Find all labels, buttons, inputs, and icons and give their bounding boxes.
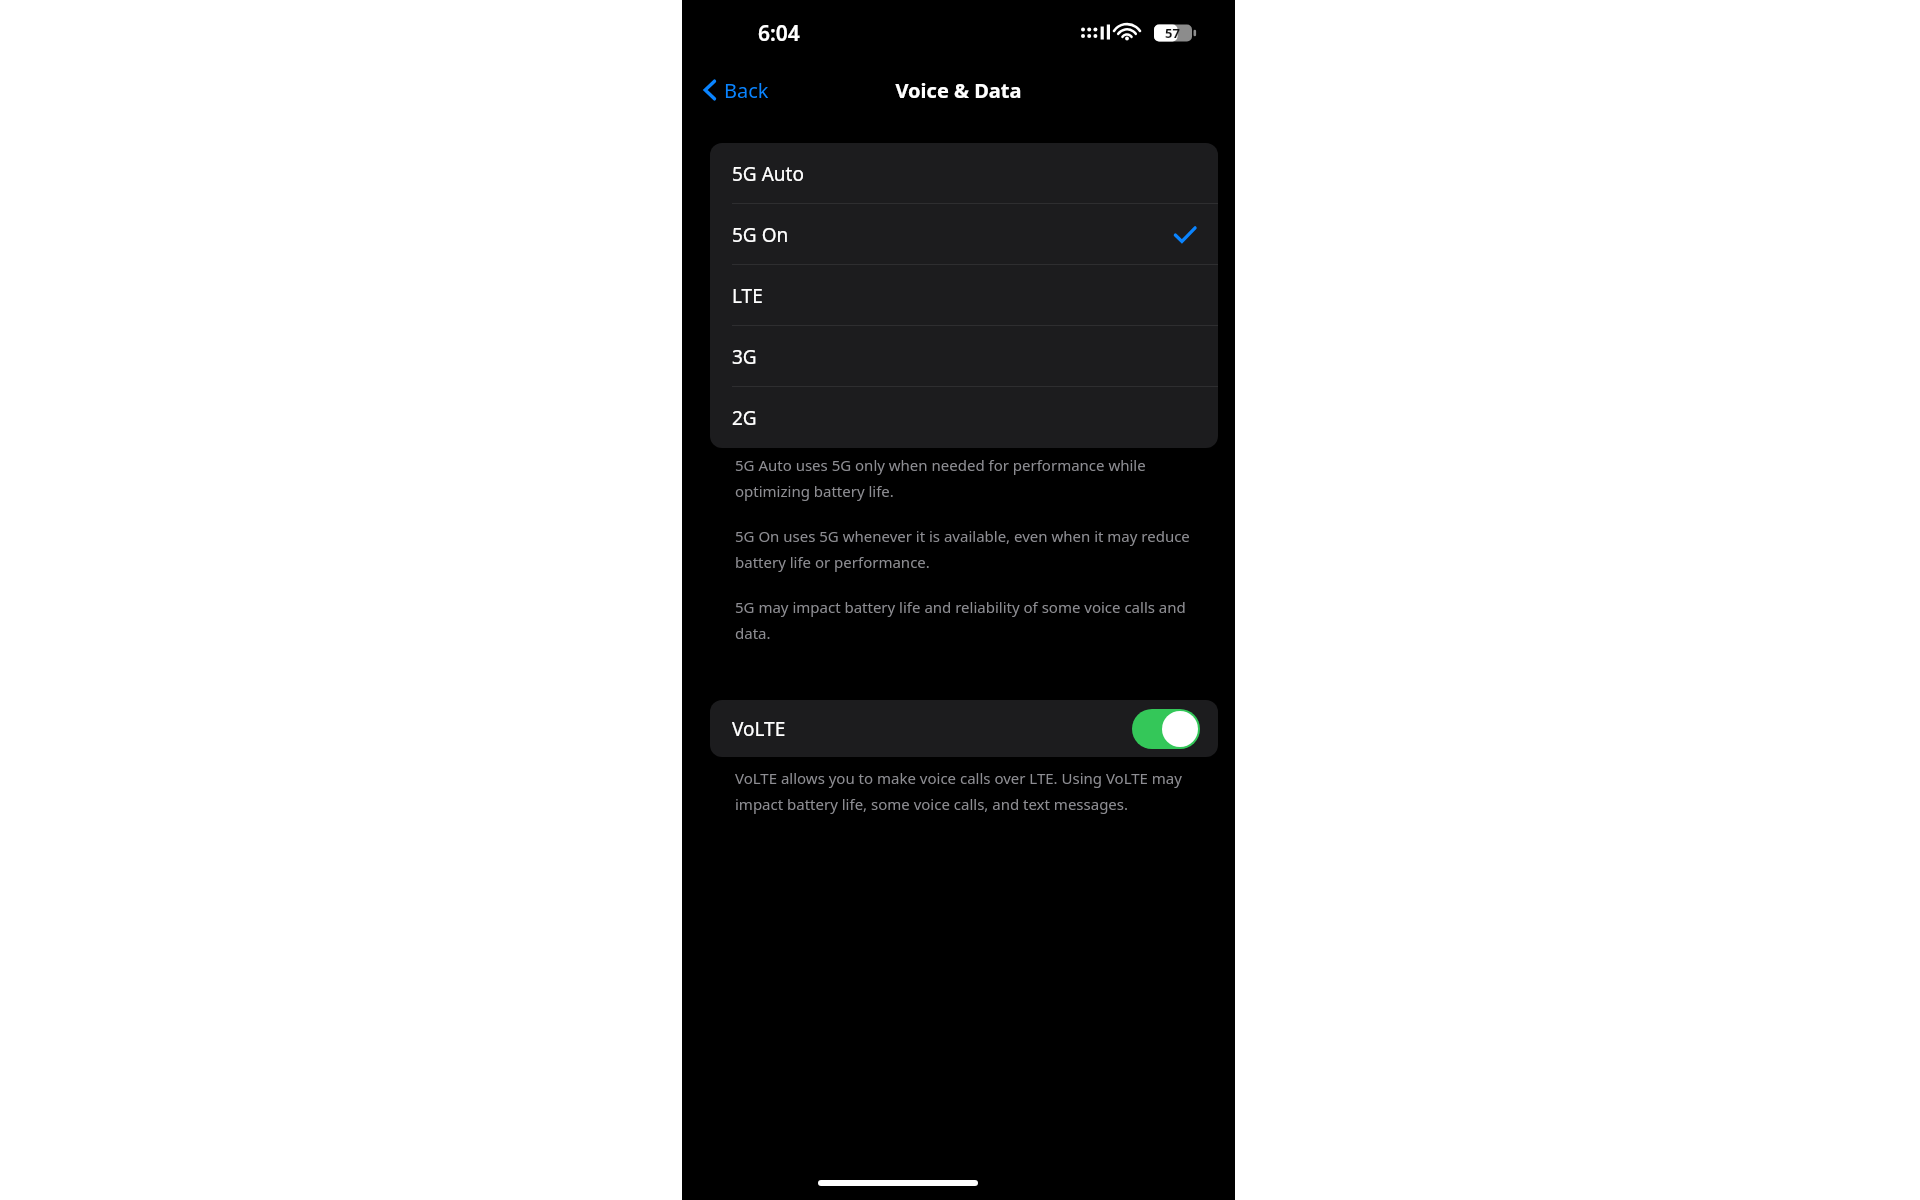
button[interactable]: 5G Auto <box>710 143 1218 204</box>
staticText: LTE <box>732 283 763 309</box>
staticText: 5G On uses 5G whenever it is available, … <box>735 526 1195 573</box>
staticText: Back <box>724 77 769 104</box>
button[interactable]: 2G <box>710 387 1218 448</box>
button[interactable]: Back <box>696 70 775 110</box>
staticText: 5G may impact battery life and reliabili… <box>735 597 1195 644</box>
staticText: VoLTE allows you to make voice calls ove… <box>735 768 1205 815</box>
staticText: 2G <box>732 405 757 431</box>
staticText: Voice & Data <box>895 77 1022 104</box>
staticText: 57 <box>1165 24 1180 42</box>
button[interactable]: VoLTE <box>710 700 1218 757</box>
staticText: 5G Auto <box>732 161 804 187</box>
button[interactable]: LTE <box>710 265 1218 326</box>
button[interactable]: 5G On <box>710 204 1218 265</box>
staticText: 5G On <box>732 222 789 248</box>
staticText: 3G <box>732 344 757 370</box>
staticText: VoLTE <box>732 716 786 742</box>
button[interactable]: VoLTE toggle, on <box>1132 709 1200 749</box>
staticText: 5G Auto uses 5G only when needed for per… <box>735 455 1195 502</box>
button[interactable]: 3G <box>710 326 1218 387</box>
staticText: 6:04 <box>758 19 800 48</box>
